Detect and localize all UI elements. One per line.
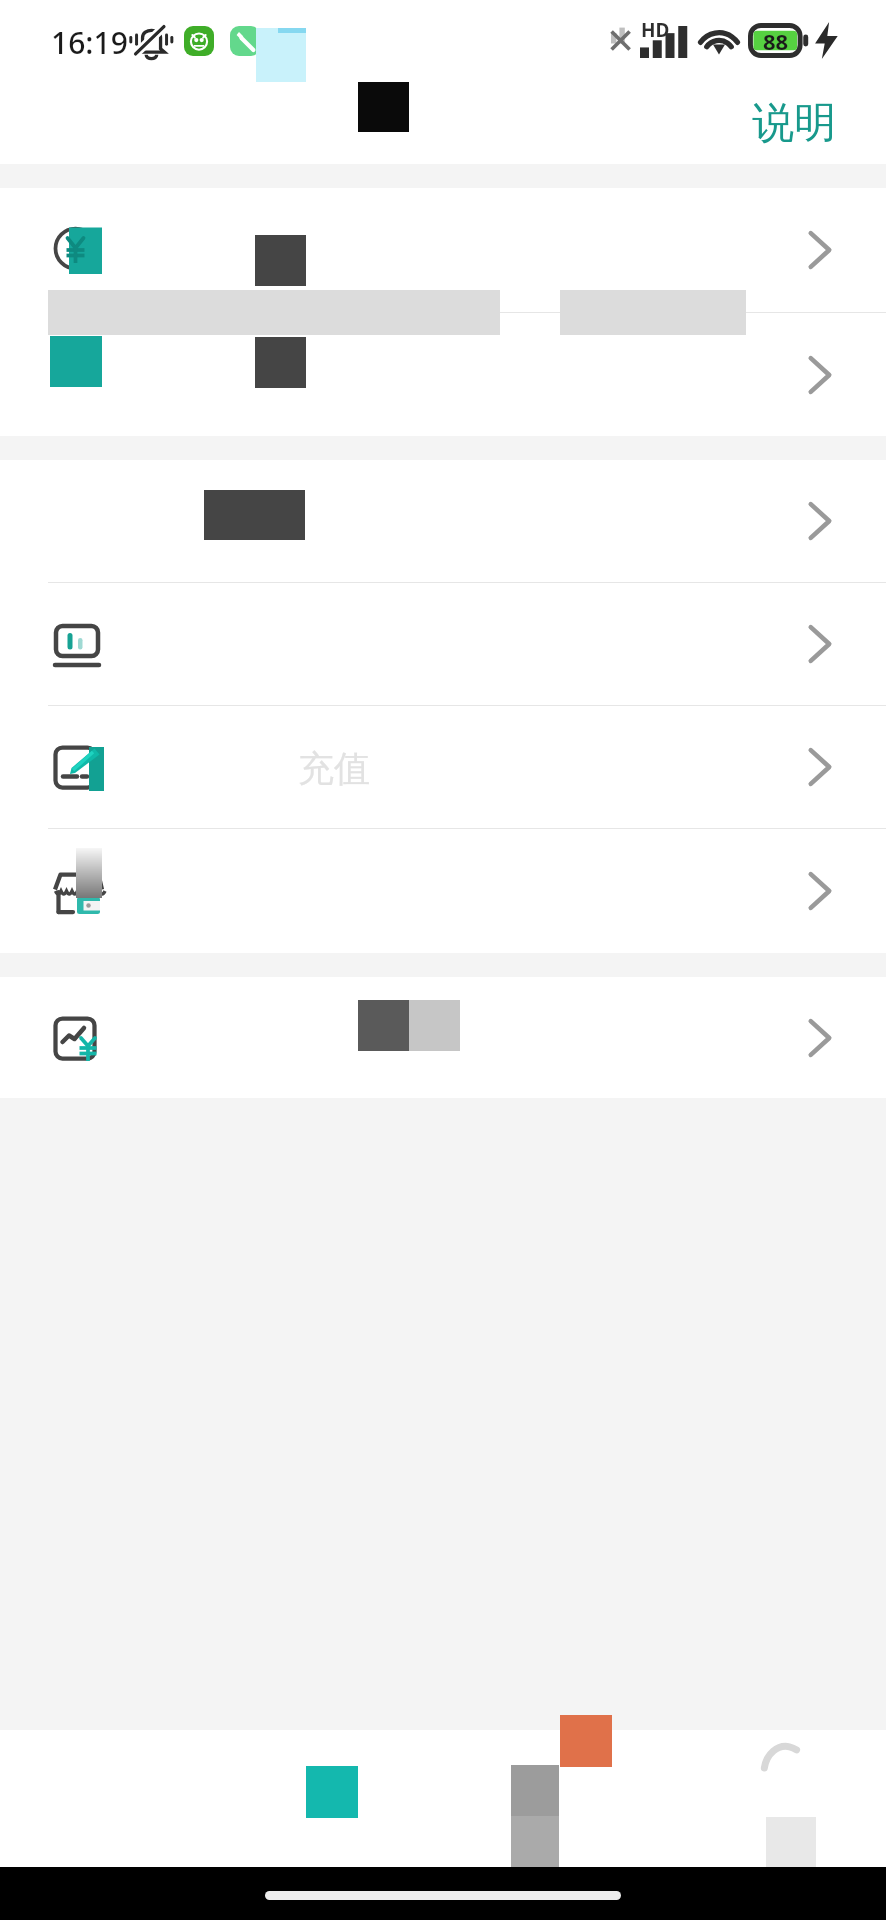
button[interactable]	[0, 977, 886, 1098]
staticText: 充值	[298, 746, 370, 791]
button[interactable]: Tab 2	[221, 1730, 442, 1867]
button[interactable]: 说明	[746, 91, 842, 156]
staticText: HD	[641, 17, 670, 43]
button[interactable]	[0, 188, 886, 312]
button[interactable]	[0, 313, 886, 436]
staticText: 说明	[752, 97, 836, 150]
button[interactable]	[0, 460, 886, 582]
button[interactable]: Tab 3	[442, 1730, 664, 1867]
button[interactable]	[0, 583, 886, 705]
staticText: 16:19	[51, 22, 128, 63]
button[interactable]: Tab 4	[664, 1730, 886, 1867]
button[interactable]	[0, 829, 886, 953]
button[interactable]	[0, 706, 886, 828]
staticText: 88	[763, 26, 789, 54]
